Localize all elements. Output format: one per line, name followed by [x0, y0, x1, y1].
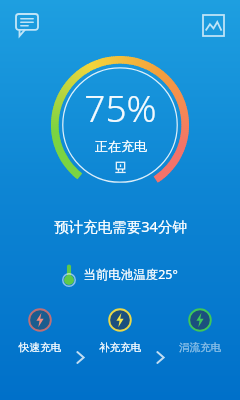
- staticText: 快速充电: [19, 341, 61, 354]
- button[interactable]: 快速充电: [11, 308, 69, 354]
- button[interactable]: 补充充电: [91, 308, 149, 354]
- button[interactable]: 涓流充电: [171, 308, 229, 354]
- button[interactable]: Messages: [12, 10, 42, 40]
- staticText: 预计充电需要34分钟: [54, 216, 187, 236]
- staticText: 75%: [84, 82, 157, 132]
- staticText: 正在充电: [95, 138, 147, 154]
- staticText: 涓流充电: [179, 341, 221, 354]
- button[interactable]: Gallery: [198, 10, 228, 40]
- staticText: 补充充电: [99, 341, 141, 354]
- staticText: 当前电池温度25°: [83, 266, 178, 283]
